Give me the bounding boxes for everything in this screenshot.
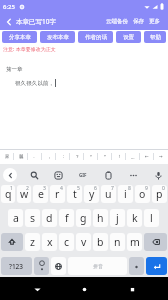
staticText: k [132, 211, 138, 225]
staticText: p [156, 187, 163, 201]
button[interactable]: Period [129, 257, 144, 275]
staticText: 1 [10, 185, 13, 192]
button[interactable]: Change language [51, 257, 66, 275]
staticText: b [97, 235, 104, 249]
button[interactable]: ， [42, 149, 56, 164]
staticText: g [80, 211, 87, 225]
button[interactable]: c [59, 233, 74, 251]
staticText: s [30, 211, 36, 225]
staticText: 拼音 [93, 263, 103, 269]
button[interactable]: … [126, 149, 140, 164]
staticText: 第一章 [6, 66, 23, 73]
button[interactable]: Home [73, 278, 95, 300]
button[interactable]: v [76, 233, 91, 251]
staticText: 设置 [123, 34, 134, 41]
staticText: m [130, 235, 140, 249]
button[interactable]: ： [56, 149, 70, 164]
staticText: 0 [162, 185, 165, 192]
button[interactable]: m [127, 233, 142, 251]
staticText: a [13, 211, 19, 225]
staticText: x [47, 235, 53, 249]
staticText: z [30, 235, 35, 249]
staticText: c [64, 235, 70, 249]
button[interactable]: j [110, 209, 125, 227]
button[interactable]: 更多 [149, 18, 160, 25]
staticText: j [116, 211, 119, 225]
button[interactable]: Back [2, 15, 15, 28]
button[interactable]: 家 [0, 149, 14, 164]
button[interactable]: 云端备份 [106, 18, 128, 25]
button[interactable]: 发布本章 [40, 31, 75, 43]
staticText: ， [47, 154, 52, 160]
button[interactable]: Voice input [151, 168, 165, 182]
button[interactable]: Clipboard [101, 168, 115, 182]
button[interactable]: o [135, 185, 150, 203]
button[interactable]: h [93, 209, 108, 227]
staticText: 2 [26, 185, 29, 192]
button[interactable]: d [42, 209, 57, 227]
staticText: 家 [5, 154, 10, 160]
button[interactable]: w [17, 185, 31, 203]
button[interactable]: ？ [70, 149, 84, 164]
button[interactable]: Hide toolbar [3, 168, 17, 182]
button[interactable]: z [25, 233, 40, 251]
button[interactable]: ?123 [1, 257, 32, 275]
staticText: 6 [94, 185, 97, 192]
button[interactable]: 保存 [133, 18, 144, 25]
button[interactable]: 帮助 [144, 31, 166, 43]
staticText: f [65, 211, 69, 225]
staticText: 作者的话 [85, 34, 107, 41]
button[interactable]: x [42, 233, 57, 251]
button[interactable]: 。 [28, 149, 42, 164]
button[interactable]: 嘱 [14, 149, 28, 164]
button[interactable]: GIF [76, 168, 90, 182]
button[interactable]: → [154, 149, 168, 164]
button[interactable]: l [144, 209, 159, 227]
button[interactable]: Search [27, 168, 41, 182]
button[interactable]: Emoji and comma [34, 257, 49, 275]
staticText: ?123 [9, 262, 24, 271]
staticText: 8 [128, 185, 131, 192]
button[interactable]: 作者的话 [78, 31, 113, 43]
button[interactable]: Shift [1, 233, 23, 251]
button[interactable]: k [127, 209, 142, 227]
button[interactable]: 拼音 [68, 257, 127, 275]
button[interactable]: Enter [146, 257, 167, 275]
staticText: t [73, 187, 77, 201]
button[interactable]: ！ [112, 149, 126, 164]
staticText: r [55, 187, 60, 201]
staticText: i [124, 187, 127, 201]
staticText: 嘱 [19, 154, 24, 160]
button[interactable]: e [33, 185, 48, 203]
button[interactable]: a [8, 209, 23, 227]
staticText: q [5, 187, 12, 201]
button[interactable]: p [152, 185, 167, 203]
button[interactable]: Delete [144, 233, 167, 251]
button[interactable]: q [1, 185, 15, 203]
button[interactable]: i [118, 185, 133, 203]
staticText: l [150, 211, 153, 225]
staticText: 5 [77, 185, 80, 192]
button[interactable]: b [93, 233, 108, 251]
button[interactable]: Emoji [51, 168, 65, 182]
button[interactable]: u [101, 185, 116, 203]
button[interactable]: n [110, 233, 125, 251]
button[interactable]: y [84, 185, 99, 203]
button[interactable]: s [25, 209, 40, 227]
button[interactable]: f [59, 209, 74, 227]
button[interactable]: ← [140, 149, 154, 164]
button[interactable]: ” [98, 149, 112, 164]
staticText: GIF [79, 172, 87, 178]
button[interactable]: Back [26, 278, 48, 300]
button[interactable]: “ [84, 149, 98, 164]
staticText: 4 [60, 185, 63, 192]
button[interactable]: 设置 [116, 31, 141, 43]
button[interactable]: g [76, 209, 91, 227]
button[interactable]: r [50, 185, 65, 203]
button[interactable]: Recent apps [121, 278, 143, 300]
button[interactable]: t [67, 185, 82, 203]
staticText: 9 [145, 185, 148, 192]
button[interactable]: 分享本章 [2, 31, 37, 43]
staticText: 本章已写10字 [16, 17, 56, 26]
button[interactable]: More options [126, 168, 140, 182]
